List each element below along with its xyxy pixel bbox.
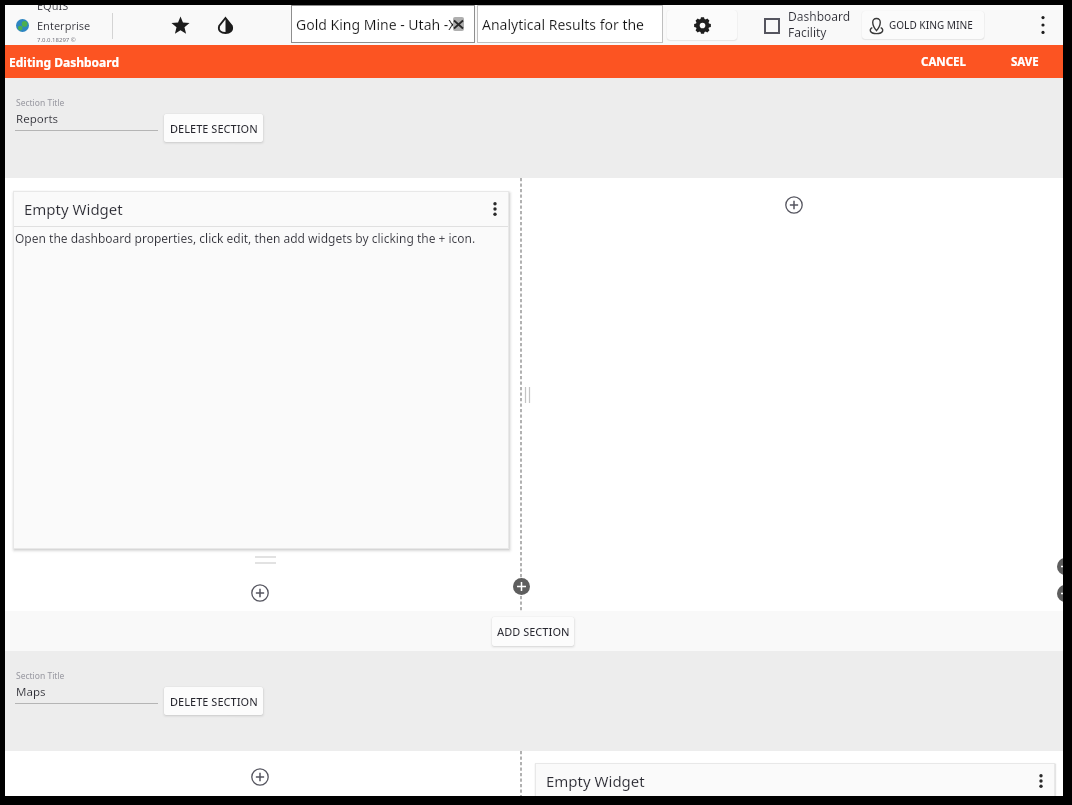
button[interactable]: Add: [1057, 558, 1063, 575]
staticText: Editing Dashboard: [9, 54, 119, 70]
button[interactable]: CANCEL: [921, 45, 966, 78]
button[interactable]: Add widget: [783, 194, 805, 216]
button[interactable]: DELETE SECTION: [164, 687, 263, 715]
staticText: Reports: [16, 111, 59, 127]
button[interactable]: Widget menu: [1031, 771, 1051, 791]
staticText: Dashboard: [788, 8, 851, 24]
staticText: DELETE SECTION: [170, 694, 258, 709]
staticText: Open the dashboard properties, click edi…: [15, 230, 476, 246]
staticText: Section Title: [16, 670, 65, 682]
staticText: Empty Widget: [24, 199, 123, 219]
staticText: ADD SECTION: [497, 624, 570, 639]
button[interactable]: More options: [1030, 12, 1056, 38]
staticText: Gold King Mine - Utah -X: [296, 15, 457, 34]
staticText: SAVE: [1011, 54, 1039, 70]
button[interactable]: Widget menu: [485, 199, 505, 219]
button[interactable]: Close tab: [453, 17, 464, 31]
button[interactable]: Favorites: [166, 11, 194, 39]
staticText: Facility: [788, 24, 827, 40]
staticText: Enterprise: [37, 18, 91, 33]
staticText: Analytical Results for the: [482, 15, 644, 34]
button[interactable]: Add widget: [249, 582, 271, 604]
button[interactable]: DELETE SECTION: [164, 114, 263, 142]
button[interactable]: GOLD KING MINE: [869, 11, 984, 39]
staticText: GOLD KING MINE: [889, 18, 973, 32]
staticText: Empty Widget: [546, 771, 645, 791]
staticText: CANCEL: [921, 54, 966, 70]
staticText: EQuIS: [37, 5, 69, 13]
button[interactable]: Add: [1057, 585, 1063, 602]
staticText: Section Title: [16, 97, 65, 109]
button[interactable]: Analytical Results for the: [477, 5, 663, 43]
button[interactable]: Add widget: [249, 766, 271, 788]
button[interactable]: ADD SECTION: [492, 617, 574, 646]
button[interactable]: Contrast: [211, 11, 239, 39]
button[interactable]: Gold King Mine - Utah -X: [291, 5, 475, 43]
button[interactable]: SAVE: [1011, 45, 1039, 78]
staticText: DELETE SECTION: [170, 121, 258, 136]
button[interactable]: Settings: [667, 10, 737, 40]
staticText: 7.0.0.18297 ©: [37, 36, 76, 44]
button[interactable]: Dashboard Facility checkbox: [764, 18, 780, 34]
button[interactable]: Add column: [513, 578, 530, 595]
staticText: Maps: [16, 684, 46, 700]
